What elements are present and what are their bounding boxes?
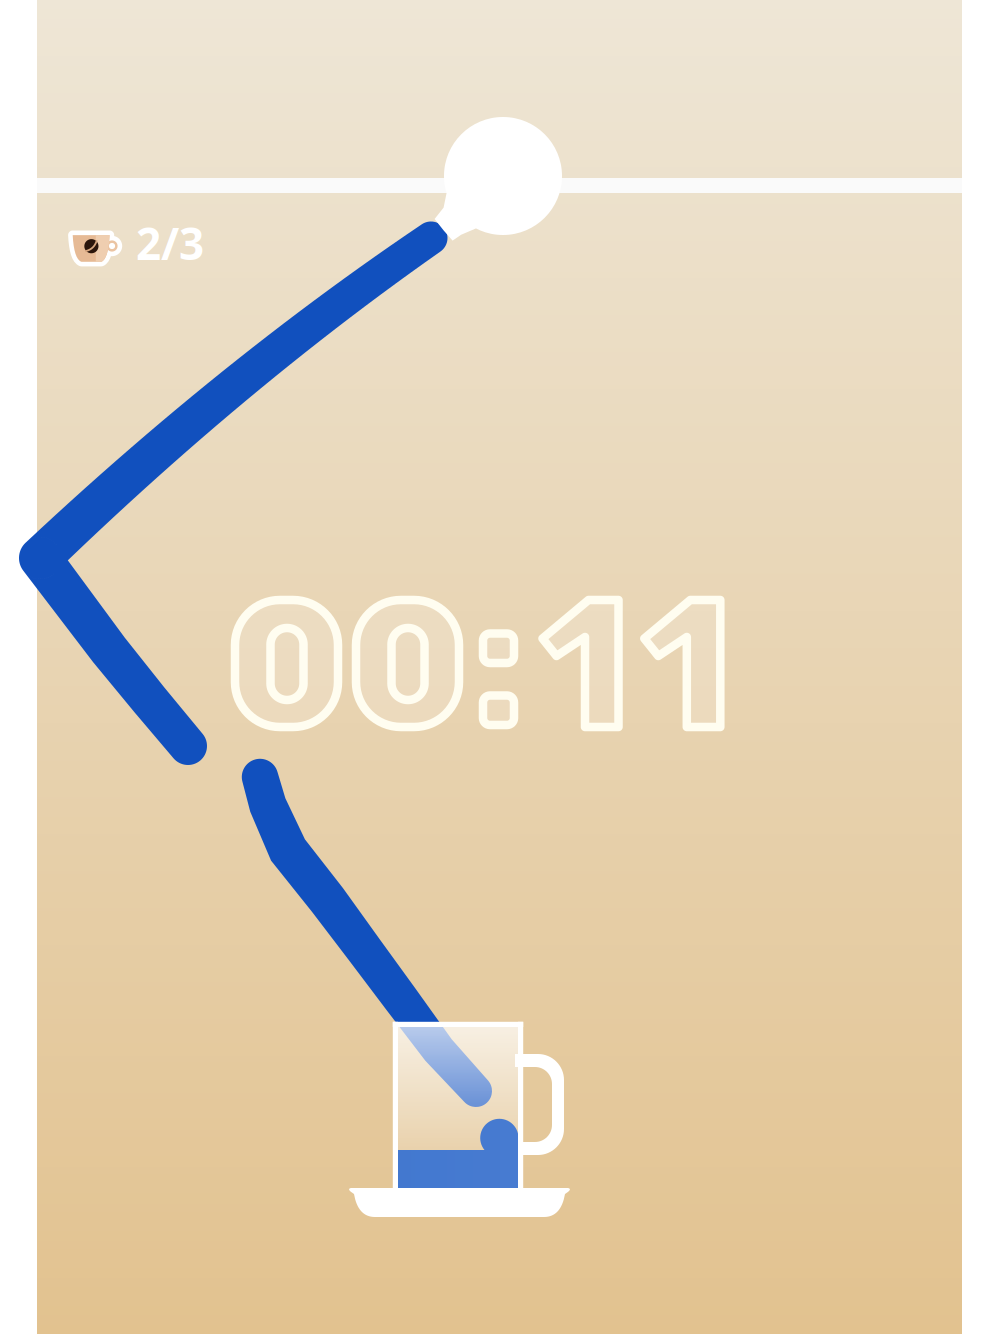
button[interactable]: 2/3 bbox=[67, 220, 187, 266]
staticText: 2/3 bbox=[136, 214, 204, 272]
